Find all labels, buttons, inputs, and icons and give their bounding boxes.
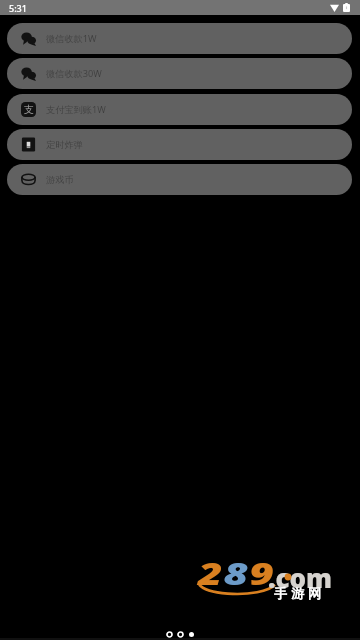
staticText: 5:31 [9,2,27,14]
button[interactable]: 微信收款30W [7,58,352,89]
staticText: 支 [24,103,34,116]
staticText: 2 [198,553,224,594]
staticText: 8 [224,553,249,594]
button[interactable]: 定时炸弹 [7,129,352,160]
staticText: 游戏币 [46,174,74,186]
button[interactable]: 支 [7,94,352,125]
button[interactable]: Home [175,629,185,639]
staticText: 微信收款30W [46,67,102,80]
button[interactable]: 微信收款1W [7,23,352,54]
button[interactable]: Recent apps [186,629,196,639]
staticText: 支付宝到账1W [46,103,106,116]
button[interactable]: 游戏币 [7,164,352,195]
staticText: 定时炸弹 [46,139,83,151]
button[interactable]: Back [164,629,174,639]
staticText: 9 [249,553,275,594]
staticText: .com [268,560,333,595]
staticText: 手游网 [272,585,323,601]
staticText: 微信收款1W [46,32,97,45]
